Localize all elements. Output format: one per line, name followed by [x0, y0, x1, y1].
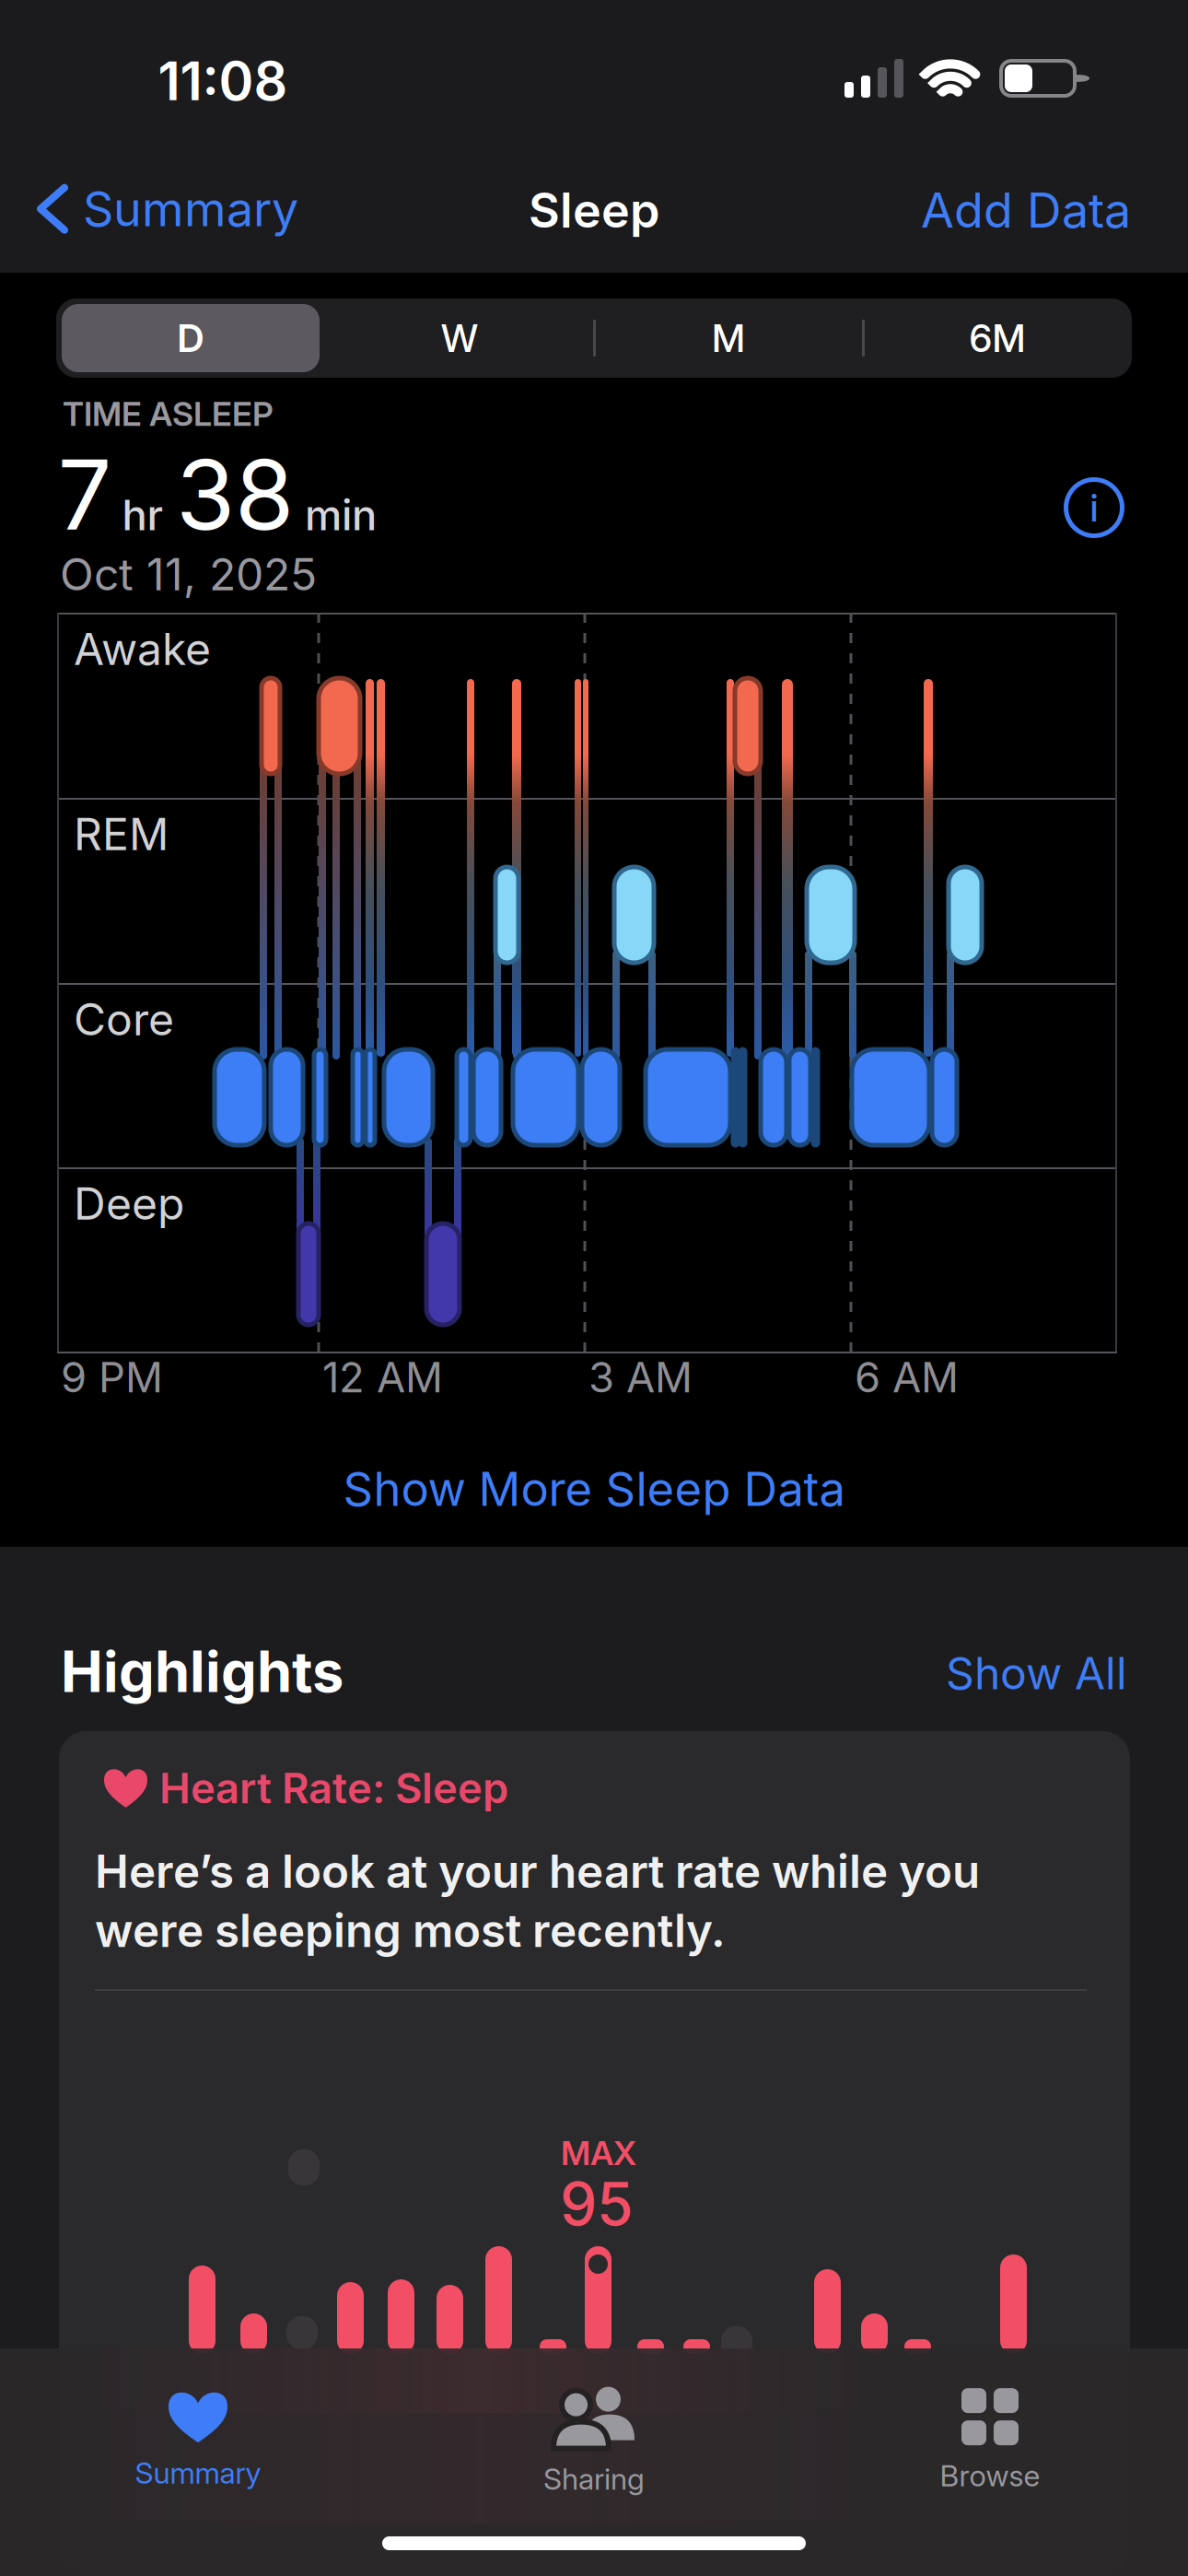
staticText: MAX	[561, 2134, 636, 2173]
staticText: Show More Sleep Data	[343, 1461, 845, 1516]
staticText: Summary	[135, 2455, 261, 2490]
button[interactable]: Summary	[51, 2376, 345, 2505]
button[interactable]: M	[600, 304, 857, 372]
button[interactable]: Show More Sleep Data	[343, 1461, 845, 1516]
staticText: Sharing	[543, 2461, 645, 2496]
staticText: 12 AM	[322, 1352, 443, 1402]
staticText: Summary	[83, 181, 298, 237]
staticText: W	[441, 316, 478, 361]
staticText: i	[1090, 485, 1098, 530]
button[interactable]: About Time Asleep	[1064, 477, 1124, 538]
button[interactable]: Show All	[759, 1647, 1127, 1699]
staticText: 7	[58, 438, 112, 551]
staticText: 3 AM	[588, 1352, 693, 1402]
staticText: Show All	[946, 1647, 1127, 1699]
button[interactable]: Sharing	[447, 2376, 741, 2505]
staticText: 38	[176, 438, 294, 551]
button[interactable]: W	[331, 304, 588, 372]
staticText: M	[712, 316, 745, 361]
staticText: REM	[74, 808, 169, 860]
button[interactable]: Add Data	[763, 182, 1131, 238]
staticText: Heart Rate: Sleep	[159, 1763, 508, 1813]
staticText: D	[177, 316, 204, 361]
button[interactable]: Browse	[843, 2376, 1137, 2505]
staticText: Awake	[74, 623, 211, 675]
staticText: 11:08	[158, 50, 288, 112]
staticText: Sleep	[529, 182, 659, 238]
button[interactable]: Summary	[41, 181, 298, 237]
staticText: Add Data	[921, 182, 1131, 238]
staticText: 95	[560, 2169, 634, 2239]
staticText: Oct 11, 2025	[60, 548, 317, 600]
staticText: Highlights	[61, 1638, 344, 1705]
staticText: Browse	[940, 2458, 1040, 2493]
button[interactable]: D	[62, 304, 320, 372]
staticText: 6 AM	[855, 1352, 959, 1402]
staticText: hr	[122, 490, 163, 540]
staticText: 9 PM	[61, 1352, 163, 1402]
staticText: Core	[74, 993, 174, 1045]
staticText: 6M	[969, 316, 1025, 361]
staticText: TIME ASLEEP	[63, 394, 274, 433]
staticText: Deep	[74, 1177, 184, 1230]
staticText: min	[305, 490, 377, 540]
button[interactable]: Heart Rate: Sleep	[59, 1731, 1130, 2576]
staticText: Here’s a look at your heart rate while y…	[95, 1844, 980, 1957]
button[interactable]: 6M	[868, 304, 1126, 372]
